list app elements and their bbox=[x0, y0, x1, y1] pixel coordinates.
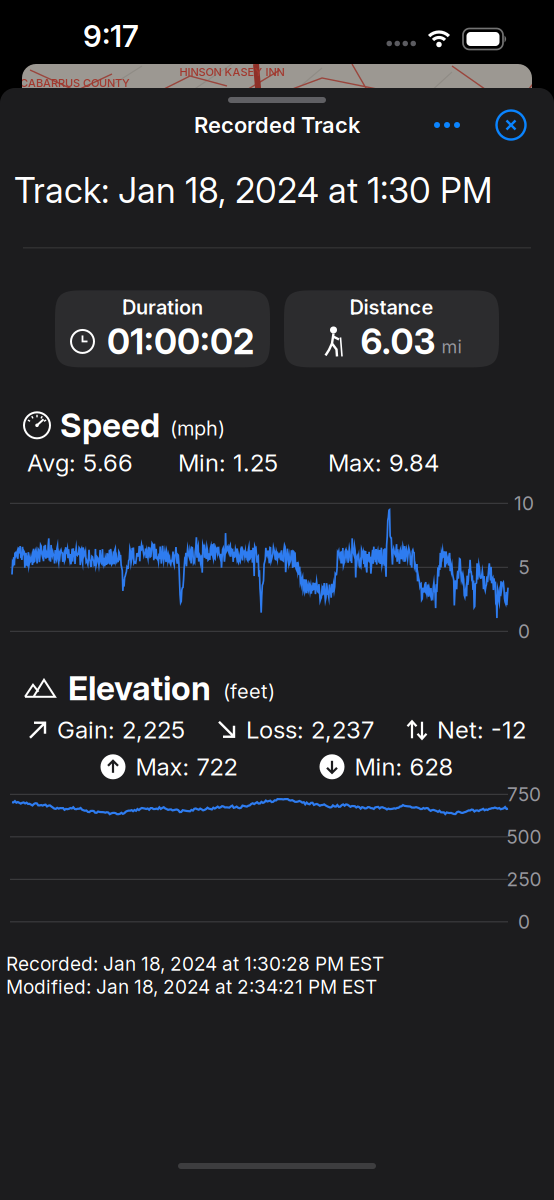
staticText: Recorded: Jan 18, 2024 at 1:30:28 PM EST bbox=[6, 952, 384, 975]
staticText: Recorded Track bbox=[194, 112, 360, 138]
staticText: (mph) bbox=[170, 416, 225, 440]
staticText: Gain: 2,225 bbox=[57, 715, 185, 744]
staticText: 0 bbox=[518, 620, 530, 643]
staticText: Loss: 2,237 bbox=[246, 715, 374, 744]
staticText: 10 bbox=[514, 492, 534, 515]
staticText: (feet) bbox=[223, 679, 275, 703]
staticText: 9:17 bbox=[83, 18, 139, 54]
button[interactable]: Close bbox=[491, 107, 531, 143]
staticText: 6.03 bbox=[360, 320, 435, 363]
staticText: CABARRUS COUNTY bbox=[20, 76, 130, 90]
staticText: Duration bbox=[122, 295, 203, 319]
button[interactable]: More bbox=[425, 107, 469, 143]
staticText: 750 bbox=[507, 783, 541, 806]
staticText: Speed bbox=[60, 405, 160, 445]
staticText: 0 bbox=[518, 910, 530, 933]
staticText: Min: 1.25 bbox=[178, 448, 278, 477]
staticText: HINSON KASEY INN bbox=[179, 65, 284, 79]
staticText: Max: 722 bbox=[135, 752, 237, 781]
staticText: 5 bbox=[518, 556, 529, 579]
staticText: Track: Jan 18, 2024 at 1:30 PM bbox=[14, 169, 493, 211]
staticText: mi bbox=[441, 336, 461, 358]
staticText: Elevation bbox=[68, 668, 211, 708]
staticText: 250 bbox=[506, 868, 541, 891]
staticText: Min: 628 bbox=[354, 752, 453, 781]
staticText: Net: -12 bbox=[437, 715, 526, 744]
staticText: Avg: 5.66 bbox=[27, 448, 133, 477]
staticText: Max: 9.84 bbox=[328, 448, 439, 477]
staticText: Modified: Jan 18, 2024 at 2:34:21 PM EST bbox=[6, 975, 377, 998]
staticText: 500 bbox=[506, 825, 541, 848]
staticText: Distance bbox=[349, 295, 433, 319]
staticText: 01:00:02 bbox=[107, 320, 254, 363]
